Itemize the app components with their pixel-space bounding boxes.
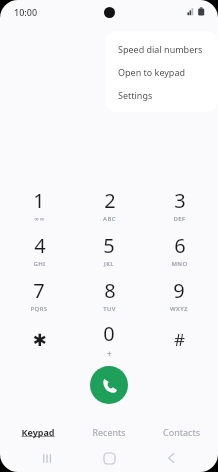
button[interactable]: 9 (148, 272, 210, 317)
staticText: MNO (171, 260, 188, 268)
staticText: 1 (33, 187, 45, 214)
button[interactable]: ✱ (8, 317, 70, 362)
button[interactable]: Recent apps (32, 444, 62, 472)
button[interactable]: 3 (148, 182, 210, 227)
staticText: 6 (174, 232, 186, 259)
staticText: 3 (174, 187, 186, 214)
button[interactable]: Recents (75, 420, 143, 444)
staticText: 10:00 (14, 6, 38, 18)
button[interactable]: 2 (78, 182, 140, 227)
staticText: # (174, 328, 185, 351)
staticText: Settings (118, 89, 153, 101)
staticText: PQRS (30, 305, 48, 313)
staticText: ABC (103, 215, 116, 223)
button[interactable]: Home (94, 444, 124, 472)
button[interactable]: # (148, 317, 210, 362)
button[interactable]: 8 (78, 272, 140, 317)
button[interactable]: 4 (8, 227, 70, 272)
button[interactable]: Settings (105, 83, 218, 106)
button[interactable]: 1 (8, 182, 70, 227)
staticText: Keypad (21, 426, 55, 438)
button[interactable]: 7 (8, 272, 70, 317)
staticText: 4 (34, 232, 46, 259)
staticText: Recents (92, 426, 126, 438)
staticText: Speed dial numbers (118, 43, 203, 55)
button[interactable]: 0 (78, 317, 140, 362)
button[interactable]: Back (156, 444, 186, 472)
button[interactable]: Open to keypad (105, 60, 218, 83)
staticText: + (107, 348, 112, 359)
button[interactable]: Speed dial numbers (105, 37, 218, 60)
button[interactable]: Contacts (147, 420, 215, 444)
button[interactable]: Call (90, 366, 128, 404)
button[interactable]: 6 (148, 227, 210, 272)
staticText: 9 (173, 277, 185, 304)
button[interactable]: Keypad (4, 420, 72, 444)
staticText: GHI (33, 260, 46, 268)
staticText: ∞∞ (34, 215, 45, 222)
staticText: WXYZ (170, 305, 188, 313)
staticText: 8 (104, 277, 116, 304)
staticText: DEF (173, 215, 186, 223)
staticText: Open to keypad (118, 66, 185, 78)
staticText: Contacts (163, 426, 200, 438)
staticText: 0 (103, 320, 115, 347)
staticText: TUV (103, 305, 116, 313)
button[interactable]: 5 (78, 227, 140, 272)
staticText: 7 (33, 277, 45, 304)
staticText: ✱ (32, 330, 47, 350)
staticText: 5 (103, 232, 115, 259)
staticText: JKL (104, 260, 114, 268)
staticText: 2 (104, 187, 116, 214)
